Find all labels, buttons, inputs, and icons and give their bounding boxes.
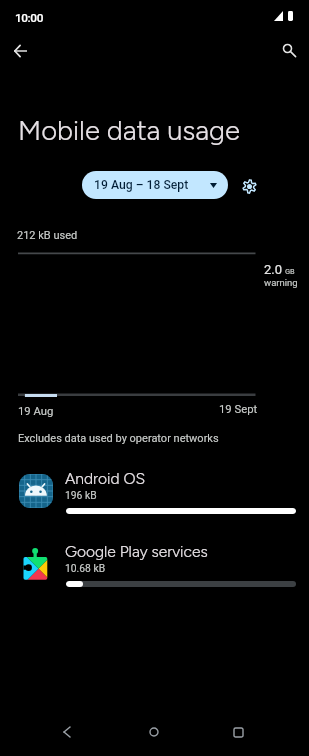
button[interactable]: Back	[3, 34, 39, 70]
button[interactable]: Android OS	[0, 468, 309, 540]
staticText: warning	[264, 277, 298, 288]
button[interactable]: Back	[52, 716, 84, 748]
button[interactable]: Search	[273, 35, 309, 71]
button[interactable]: Settings	[235, 173, 263, 201]
staticText: Mobile data usage	[18, 114, 241, 147]
staticText: 19 Aug – 18 Sept	[94, 178, 189, 192]
staticText: 19 Aug	[18, 405, 54, 418]
staticText: 196 kB	[65, 489, 97, 501]
button[interactable]: Home	[138, 716, 170, 748]
staticText: 19 Sept	[219, 403, 258, 416]
staticText: GB	[285, 267, 295, 276]
staticText: Google Play services	[65, 542, 208, 561]
staticText: 2.0	[264, 262, 283, 277]
button[interactable]: Google Play services	[0, 541, 309, 613]
button[interactable]: 19 Aug – 18 Sept	[82, 171, 228, 199]
staticText: 10.68 kB	[65, 562, 106, 574]
staticText: Android OS	[65, 469, 146, 488]
staticText: Excludes data used by operator networks	[18, 432, 219, 445]
button[interactable]: Recents	[222, 716, 254, 748]
staticText: 212 kB used	[17, 229, 78, 242]
staticText: 10:00	[15, 11, 43, 25]
